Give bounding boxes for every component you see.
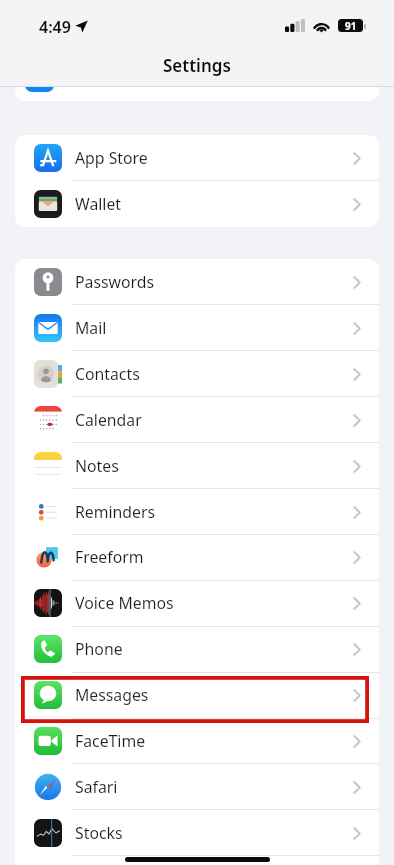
button[interactable]: Weather	[15, 856, 379, 865]
button[interactable]: Reminders	[15, 489, 379, 535]
staticText: Wallet	[75, 193, 122, 215]
staticText: Notes	[75, 455, 119, 477]
staticText: Phone	[75, 638, 123, 660]
button[interactable]: Wallet	[15, 181, 379, 227]
button[interactable]: Messages	[15, 672, 379, 718]
staticText: Reminders	[75, 501, 156, 523]
button[interactable]: Passwords	[15, 259, 379, 305]
staticText: Contacts	[75, 363, 140, 385]
staticText: Voice Memos	[75, 592, 174, 614]
button[interactable]: Freeform	[15, 534, 379, 580]
staticText: App Store	[75, 147, 148, 169]
staticText: FaceTime	[75, 730, 146, 752]
button[interactable]: Phone	[15, 626, 379, 672]
button[interactable]: Voice Memos	[15, 580, 379, 626]
staticText: Calendar	[75, 409, 142, 431]
staticText: Settings	[163, 54, 231, 77]
staticText: 91	[345, 19, 357, 32]
staticText: Messages	[75, 684, 149, 706]
staticText: Safari	[75, 776, 118, 798]
button[interactable]: Contacts	[15, 351, 379, 397]
button[interactable]: FaceTime	[15, 718, 379, 764]
button[interactable]: Stocks	[15, 810, 379, 856]
staticText: 4:49	[39, 16, 71, 38]
button[interactable]: App Store	[15, 135, 379, 181]
staticText: Freeform	[75, 546, 144, 568]
button[interactable]: Mail	[15, 305, 379, 351]
staticText: Stocks	[75, 822, 123, 844]
staticText: Passwords	[75, 271, 155, 293]
button[interactable]: Safari	[15, 764, 379, 810]
staticText: Mail	[75, 317, 107, 339]
button[interactable]: Calendar	[15, 397, 379, 443]
button[interactable]: Notes	[15, 443, 379, 489]
